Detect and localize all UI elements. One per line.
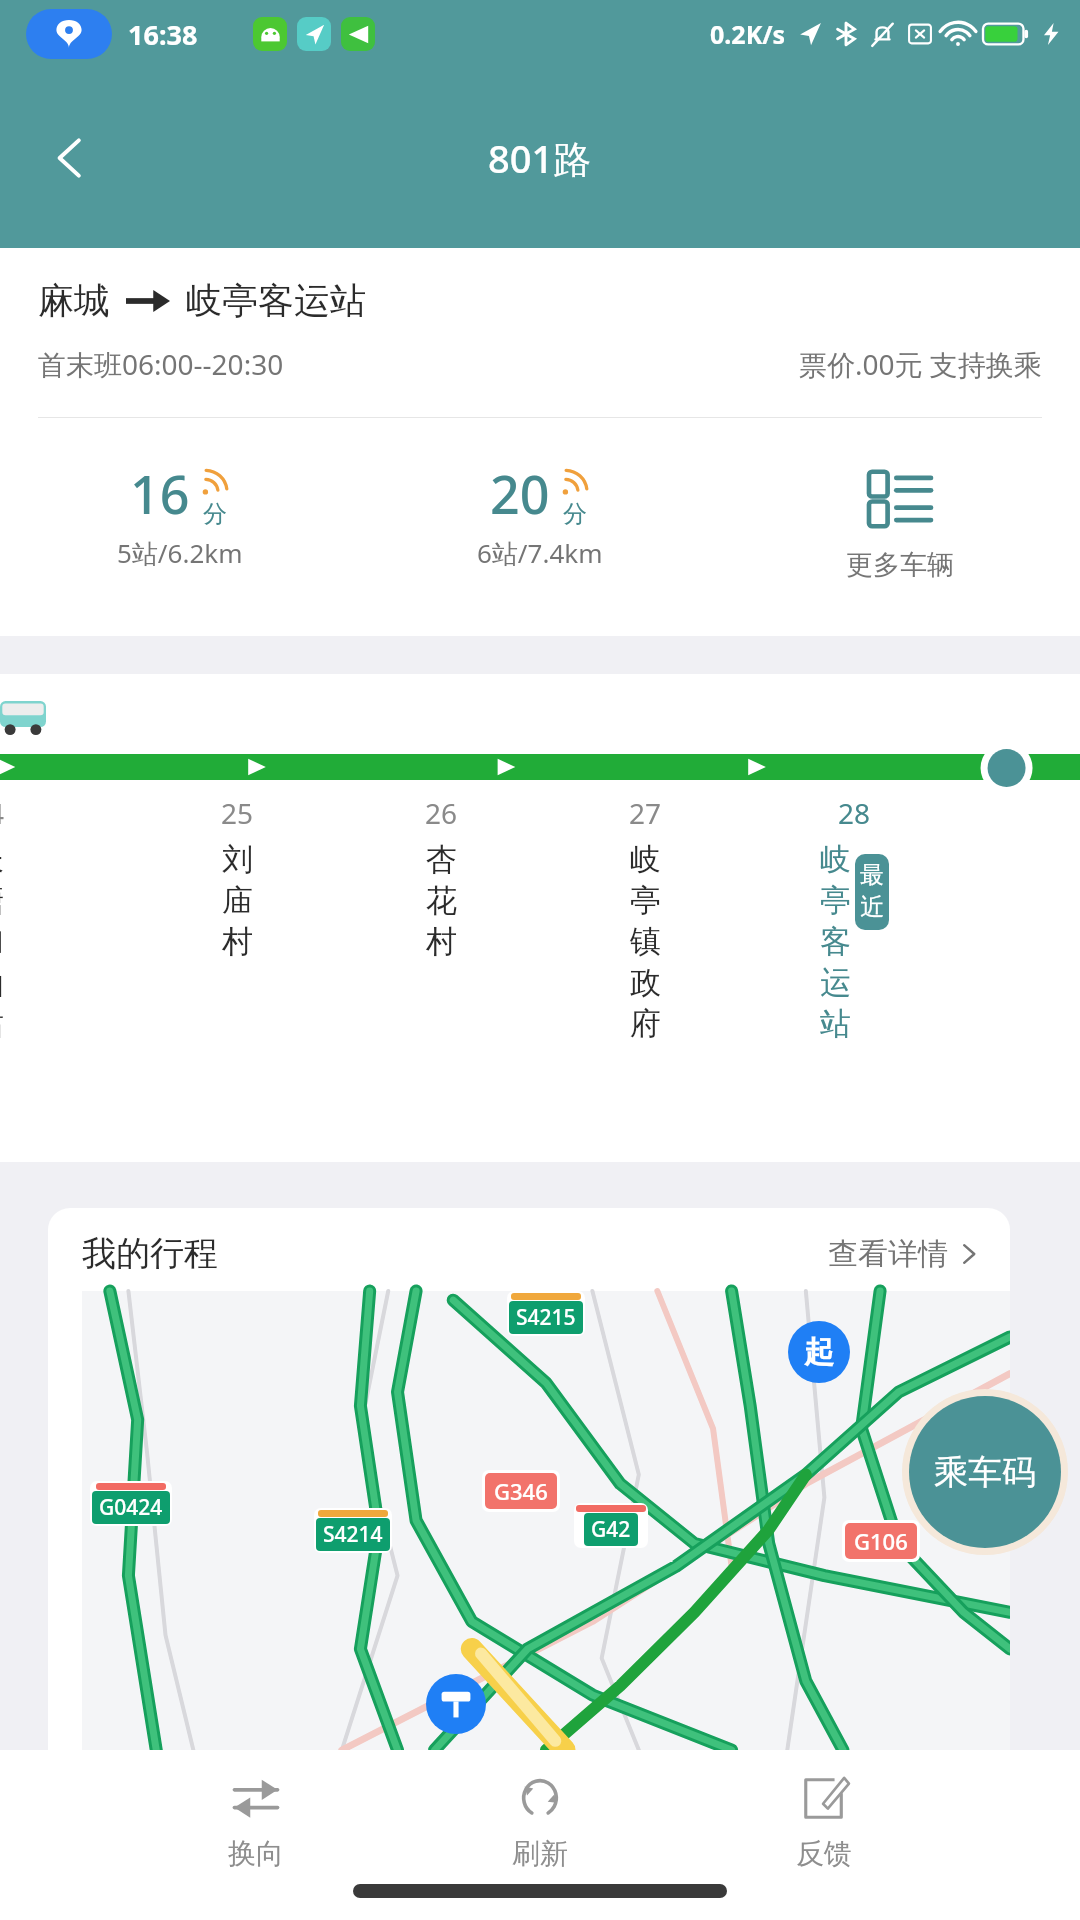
button[interactable]: 换向 xyxy=(228,1762,284,1883)
staticText: 起 xyxy=(804,1333,834,1371)
staticText: 票价.00元 支持换乘 xyxy=(799,345,1042,383)
button[interactable]: 25 xyxy=(221,794,254,963)
staticText: 岐 xyxy=(630,840,661,879)
button[interactable]: 16 xyxy=(0,458,360,571)
button[interactable]: 27 xyxy=(629,794,662,1045)
staticText: 麻城 xyxy=(38,278,110,323)
button[interactable]: 更多车辆 xyxy=(720,458,1080,582)
button[interactable]: 24 xyxy=(0,794,5,1045)
staticText: 分 xyxy=(203,499,227,529)
staticText: 客 xyxy=(820,922,851,961)
staticText: 府 xyxy=(630,1004,661,1043)
button[interactable]: 20 xyxy=(360,458,720,571)
staticText: 我的行程 xyxy=(82,1232,218,1275)
staticText: 26 xyxy=(425,794,458,832)
staticText: 刘 xyxy=(222,840,253,879)
staticText: 24 xyxy=(0,794,5,832)
staticText: 6站/7.4km xyxy=(477,535,603,571)
staticText: 岐 xyxy=(820,840,851,879)
staticText: 0.2K/s xyxy=(710,17,786,51)
staticText: 近 xyxy=(860,892,884,922)
button[interactable]: 28 xyxy=(820,794,889,1045)
staticText: 查看详情 xyxy=(828,1235,948,1273)
staticText: 杏 xyxy=(426,840,457,879)
staticText: 刷新 xyxy=(512,1836,568,1871)
button[interactable]: 乘车码 xyxy=(909,1396,1061,1548)
staticText: 岐亭客运站 xyxy=(186,278,366,323)
staticText: 站 xyxy=(0,1004,4,1043)
staticText: 换向 xyxy=(228,1836,284,1871)
button[interactable]: 刷新 xyxy=(512,1762,568,1883)
staticText: G106 xyxy=(854,1526,908,1556)
staticText: 反馈 xyxy=(796,1836,852,1871)
staticText: 20 xyxy=(490,458,550,529)
staticText: 更多车辆 xyxy=(846,548,954,582)
staticText: S4214 xyxy=(323,1520,383,1549)
button[interactable]: 26 xyxy=(425,794,458,963)
staticText: 首末班06:00--20:30 xyxy=(38,345,284,383)
staticText: 28 xyxy=(838,794,871,832)
staticText: 庙 xyxy=(222,881,253,920)
button[interactable]: 反馈 xyxy=(796,1762,852,1883)
button[interactable]: Back xyxy=(28,116,112,200)
staticText: 塘 xyxy=(0,881,4,920)
button[interactable]: 查看详情 xyxy=(828,1235,980,1273)
staticText: 花 xyxy=(426,881,457,920)
staticText: 村 xyxy=(222,922,253,961)
staticText: 分 xyxy=(563,499,587,529)
staticText: 政 xyxy=(630,963,661,1002)
staticText: S4215 xyxy=(516,1303,576,1332)
staticText: 油 xyxy=(0,963,4,1002)
staticText: 16:38 xyxy=(128,16,198,53)
staticText: 16 xyxy=(130,458,190,529)
staticText: 最 xyxy=(860,860,884,890)
staticText: 亭 xyxy=(630,881,661,920)
staticText: G346 xyxy=(494,1476,548,1506)
staticText: 亭 xyxy=(820,881,851,920)
staticText: 运 xyxy=(820,963,851,1002)
staticText: 站 xyxy=(820,1004,851,1043)
staticText: 801路 xyxy=(488,132,592,184)
staticText: G42 xyxy=(591,1515,631,1544)
staticText: G0424 xyxy=(99,1493,163,1522)
staticText: 27 xyxy=(629,794,662,832)
staticText: 乘车码 xyxy=(934,1451,1036,1494)
staticText: 25 xyxy=(221,794,254,832)
staticText: 加 xyxy=(0,922,4,961)
staticText: 村 xyxy=(426,922,457,961)
staticText: 5站/6.2km xyxy=(117,535,243,571)
staticText: 镇 xyxy=(630,922,661,961)
staticText: 长 xyxy=(0,840,4,879)
button[interactable]: 我的行程 xyxy=(48,1208,1010,1750)
